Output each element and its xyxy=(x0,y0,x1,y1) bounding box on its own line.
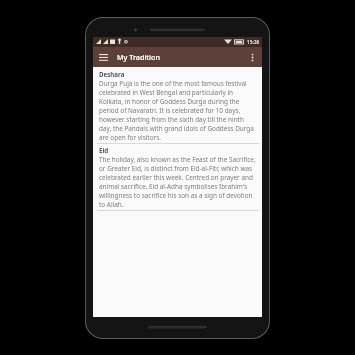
button[interactable]: More options xyxy=(242,47,262,67)
staticText: My Tradition xyxy=(117,52,242,62)
staticText: Eid xyxy=(99,146,109,154)
staticText: 15:26 xyxy=(247,39,260,46)
staticText: Durga Puja is the one of the most famous… xyxy=(99,79,257,142)
button[interactable]: Open navigation menu xyxy=(93,47,113,67)
staticText: Deshara xyxy=(99,70,125,78)
staticText: The holiday, also known as the Feast of … xyxy=(99,155,257,209)
